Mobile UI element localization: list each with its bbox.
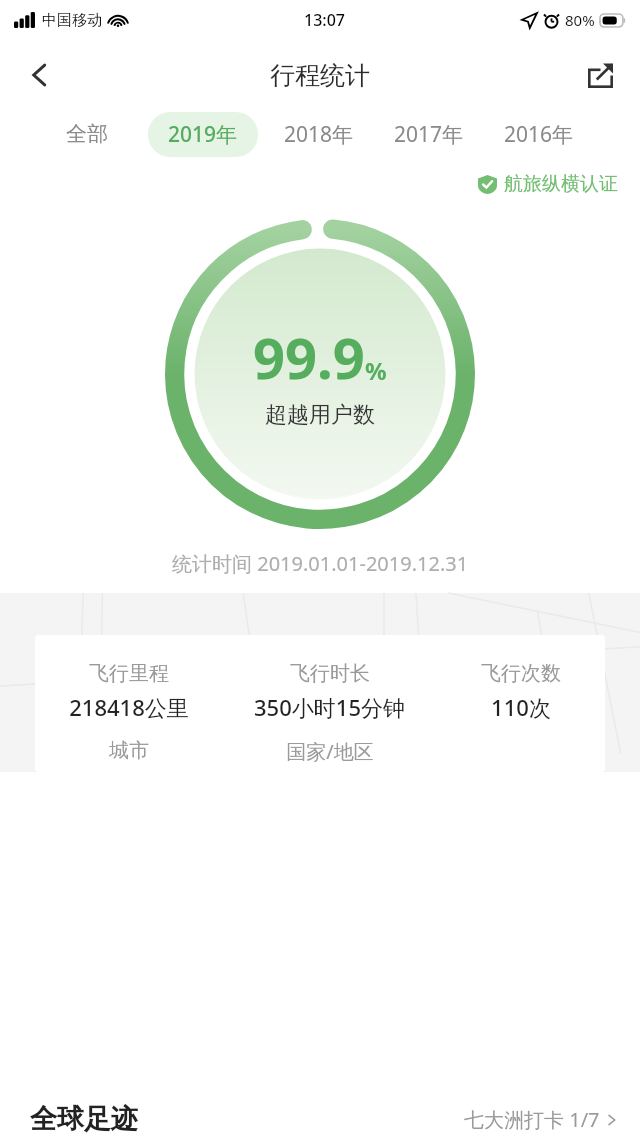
staticText: 全球足迹	[30, 1102, 138, 1136]
staticText: 飞行次数	[481, 661, 561, 686]
staticText: 国家/地区	[286, 738, 374, 765]
staticText: 超越用户数	[265, 401, 375, 429]
button[interactable]: Back	[10, 45, 70, 105]
staticText: 80%	[565, 10, 595, 30]
button[interactable]: 2016年	[494, 113, 584, 156]
button[interactable]: 2017年	[384, 113, 474, 156]
staticText: 航旅纵横认证	[504, 172, 618, 196]
button[interactable]: 航旅纵横认证	[474, 168, 622, 200]
staticText: 统计时间 2019.01.01-2019.12.31	[172, 550, 469, 577]
staticText: 行程统计	[270, 60, 370, 91]
staticText: 13:07	[304, 9, 345, 31]
button[interactable]: Share	[570, 45, 630, 105]
staticText: 中国移动	[42, 11, 102, 30]
staticText: 城市	[109, 738, 149, 763]
staticText: 飞行时长	[290, 661, 370, 686]
staticText: 99.9	[253, 319, 365, 395]
staticText: 350小时15分钟	[254, 692, 405, 722]
button[interactable]: 2018年	[274, 113, 364, 156]
staticText: 2019年	[168, 120, 238, 149]
staticText: 全部	[66, 121, 108, 147]
staticText: %	[365, 354, 387, 387]
button[interactable]: 全部	[56, 114, 118, 154]
staticText: 飞行里程	[89, 661, 169, 686]
button[interactable]: 2019年	[148, 112, 258, 157]
staticText: 110次	[491, 692, 551, 722]
staticText: 218418公里	[69, 692, 189, 722]
button[interactable]: 七大洲打卡 1/7	[464, 1106, 618, 1133]
staticText: 2018年	[284, 120, 354, 149]
staticText: 七大洲打卡 1/7	[464, 1106, 600, 1133]
staticText: 2016年	[504, 120, 574, 149]
staticText: 2017年	[394, 120, 464, 149]
